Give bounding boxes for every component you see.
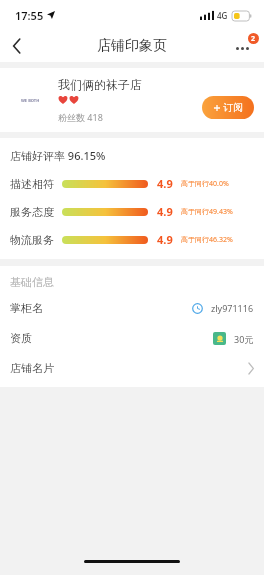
staticText: 4G	[217, 10, 228, 21]
staticText: 店铺好评率 96.15%	[10, 148, 106, 163]
staticText: 掌柜名	[10, 301, 43, 315]
staticText: zly971116	[211, 302, 254, 314]
staticText: 高于同行40.0%	[181, 179, 229, 189]
button[interactable]: WE BOTH	[0, 68, 264, 132]
button[interactable]: 订阅	[202, 96, 254, 119]
staticText: 高于同行49.43%	[181, 207, 233, 217]
staticText: 店铺印象页	[97, 37, 167, 55]
staticText: 物流服务	[10, 233, 54, 247]
staticText: 描述相符	[10, 177, 54, 191]
staticText: 4.9	[157, 176, 173, 191]
staticText: 基础信息	[10, 275, 54, 289]
staticText: 店铺名片	[10, 361, 54, 375]
staticText: 17:55	[15, 8, 44, 23]
staticText: 服务态度	[10, 205, 54, 219]
staticText: 订阅	[223, 101, 243, 114]
staticText: 4.9	[157, 204, 173, 219]
staticText: 4.9	[157, 232, 173, 247]
button[interactable]: Back	[0, 30, 34, 62]
button[interactable]: 掌柜名	[0, 299, 264, 317]
staticText: WE BOTH	[21, 98, 40, 103]
staticText: 我们俩的袜子店	[58, 77, 142, 92]
button[interactable]: 资质	[0, 329, 264, 347]
staticText: 高于同行46.32%	[181, 235, 233, 245]
staticText: 粉丝数 418	[58, 111, 103, 123]
staticText: 30元	[234, 333, 254, 345]
button[interactable]: More options	[226, 30, 258, 62]
staticText: 资质	[10, 331, 32, 345]
staticText: 2	[251, 34, 256, 44]
button[interactable]: 店铺名片	[0, 359, 264, 377]
